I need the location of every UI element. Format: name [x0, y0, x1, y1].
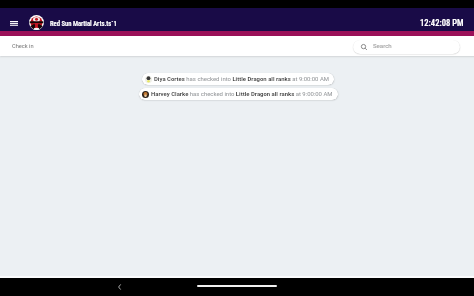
- button[interactable]: Back: [111, 279, 127, 295]
- staticText: Red Sun Martial Arts.ts´1: [50, 20, 117, 28]
- button[interactable]: Search: [353, 40, 460, 54]
- staticText: Harvey Clarke has checked into Little Dr…: [151, 90, 333, 97]
- button[interactable]: Diya Cortes has checked into Little Drag…: [142, 73, 334, 85]
- staticText: Check in: [12, 43, 34, 50]
- button[interactable]: Open navigation menu: [6, 15, 22, 31]
- staticText: Search: [373, 42, 392, 49]
- staticText: 12:42:08 PM: [420, 18, 464, 28]
- staticText: Diya Cortes has checked into Little Drag…: [154, 75, 329, 82]
- button[interactable]: Harvey Clarke has checked into Little Dr…: [139, 88, 338, 100]
